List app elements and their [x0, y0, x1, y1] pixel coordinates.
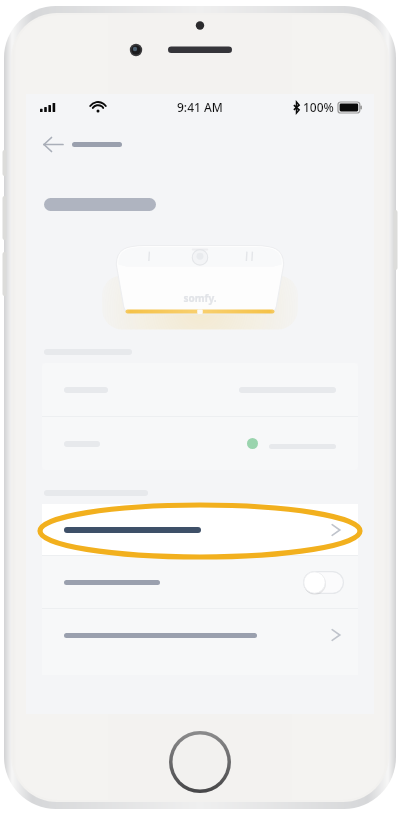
staticText: 100%: [303, 99, 334, 115]
button[interactable]: Toggle: [42, 556, 358, 608]
button[interactable]: Toggle: [303, 571, 344, 594]
staticText: somfy.: [183, 291, 217, 305]
button[interactable]: [42, 609, 358, 661]
staticText: 9:41 AM: [177, 99, 223, 115]
button[interactable]: [42, 504, 358, 555]
button[interactable]: Back: [40, 133, 66, 155]
